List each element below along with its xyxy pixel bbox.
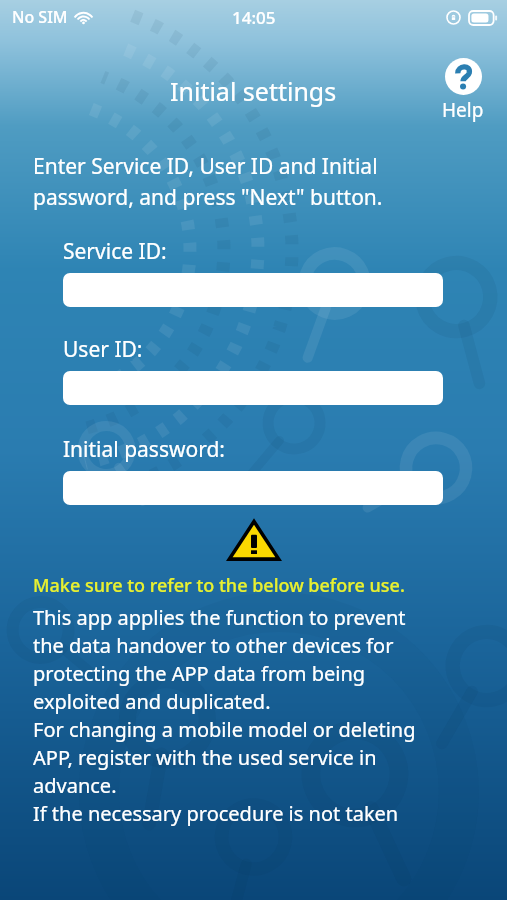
staticText: This app applies the function to prevent… (33, 604, 416, 827)
staticText: Help (442, 97, 484, 123)
staticText: Initial settings (170, 74, 337, 108)
staticText: Make sure to refer to the below before u… (33, 573, 405, 598)
staticText: Enter Service ID, User ID and Initial pa… (33, 152, 489, 211)
button[interactable]: Help (436, 56, 490, 125)
staticText: User ID: (63, 335, 143, 364)
button[interactable]: Service ID: (63, 273, 443, 307)
button[interactable]: Initial password: (63, 471, 443, 505)
staticText: No SIM (12, 6, 68, 28)
staticText: 14:05 (232, 6, 276, 29)
staticText: Service ID: (63, 237, 167, 266)
staticText: Initial password: (63, 435, 225, 464)
button[interactable]: User ID: (63, 371, 443, 405)
